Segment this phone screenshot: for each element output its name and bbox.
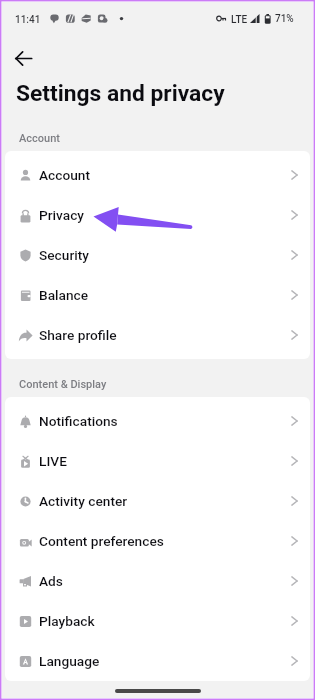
staticText: Playback bbox=[39, 613, 95, 629]
staticText: 71% bbox=[275, 13, 294, 25]
staticText: LTE bbox=[231, 14, 248, 26]
staticText: Ads bbox=[39, 573, 63, 589]
button[interactable]: Playback bbox=[5, 601, 310, 641]
button[interactable]: Ads bbox=[5, 561, 310, 601]
staticText: Balance bbox=[39, 287, 89, 303]
staticText: 11:41 bbox=[15, 14, 41, 26]
staticText: Content & Display bbox=[19, 378, 107, 391]
button[interactable]: Account bbox=[5, 155, 310, 195]
button[interactable]: Security bbox=[5, 235, 310, 275]
staticText: LIVE bbox=[39, 453, 67, 469]
button[interactable]: Balance bbox=[5, 275, 310, 315]
staticText: Content preferences bbox=[39, 533, 164, 549]
staticText: Account bbox=[19, 132, 61, 145]
button[interactable]: Notifications bbox=[5, 401, 310, 441]
button[interactable]: Content preferences bbox=[5, 521, 310, 561]
staticText: Notifications bbox=[39, 413, 118, 429]
staticText: Settings and privacy bbox=[16, 80, 225, 107]
button[interactable]: Share profile bbox=[5, 315, 310, 355]
button[interactable]: Activity center bbox=[5, 481, 310, 521]
staticText: Privacy bbox=[39, 207, 84, 223]
button[interactable]: LIVE bbox=[5, 441, 310, 481]
staticText: Language bbox=[39, 653, 100, 669]
staticText: Share profile bbox=[39, 327, 117, 343]
staticText: Activity center bbox=[39, 493, 128, 509]
button[interactable]: Back bbox=[8, 43, 38, 73]
staticText: Security bbox=[39, 247, 89, 263]
button[interactable]: Language bbox=[5, 641, 310, 681]
button[interactable]: Privacy bbox=[5, 195, 310, 235]
staticText: Account bbox=[39, 167, 91, 183]
